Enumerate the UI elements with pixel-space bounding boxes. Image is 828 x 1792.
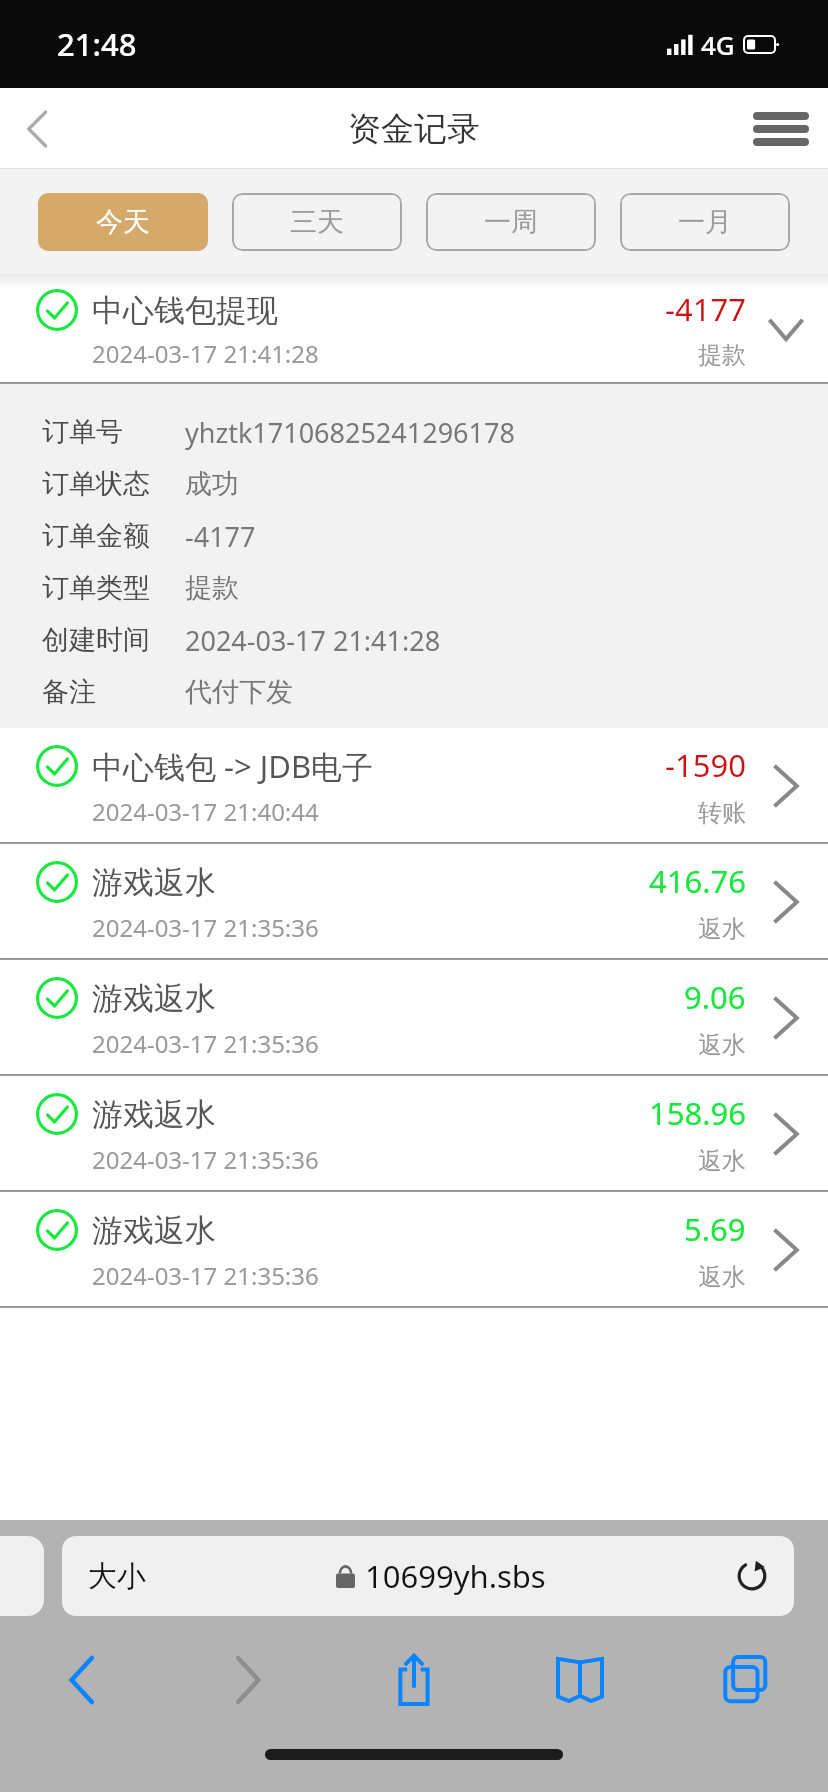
staticText: yhztk17106825241296178: [185, 414, 515, 451]
button[interactable]: 中心钱包提现: [0, 274, 828, 384]
staticText: 2024-03-17 21:35:36: [92, 1027, 319, 1060]
staticText: 一月: [678, 205, 732, 239]
button[interactable]: Menu: [746, 94, 816, 164]
staticText: 订单状态: [42, 467, 185, 501]
staticText: 返水: [698, 1262, 746, 1292]
button[interactable]: 中心钱包 -> JDB电子: [0, 728, 828, 844]
staticText: 资金记录: [348, 108, 480, 150]
staticText: 9.06: [684, 976, 746, 1018]
staticText: -4177: [665, 288, 746, 330]
staticText: 提款: [698, 340, 746, 370]
staticText: 今天: [96, 205, 150, 239]
button[interactable]: 游戏返水: [0, 1076, 828, 1192]
staticText: 成功: [185, 467, 239, 501]
staticText: 21:48: [57, 23, 137, 65]
staticText: 4G: [701, 27, 735, 62]
other: Details: [768, 879, 804, 925]
staticText: 5.69: [684, 1208, 746, 1250]
staticText: 2024-03-17 21:40:44: [92, 795, 319, 828]
staticText: 2024-03-17 21:41:28: [92, 337, 319, 370]
button[interactable]: 三天: [232, 193, 402, 251]
staticText: 416.76: [649, 860, 746, 902]
staticText: 游戏返水: [92, 1095, 216, 1134]
staticText: 提款: [185, 571, 239, 605]
staticText: 订单类型: [42, 571, 185, 605]
button[interactable]: 游戏返水: [0, 844, 828, 960]
staticText: 2024-03-17 21:35:36: [92, 911, 319, 944]
staticText: 备注: [42, 675, 185, 709]
staticText: 2024-03-17 21:35:36: [92, 1143, 319, 1176]
button[interactable]: Previous tab: [0, 1536, 44, 1616]
staticText: 大小: [88, 1558, 146, 1595]
other: Details: [768, 995, 804, 1041]
staticText: -4177: [185, 518, 256, 555]
staticText: 转账: [698, 798, 746, 828]
button[interactable]: Forward: [204, 1636, 292, 1724]
button[interactable]: Bookmarks: [536, 1636, 624, 1724]
staticText: 返水: [698, 914, 746, 944]
staticText: 158.96: [649, 1092, 746, 1134]
staticText: 一周: [484, 205, 538, 239]
staticText: 代付下发: [185, 675, 293, 709]
button[interactable]: Back: [38, 1636, 126, 1724]
button[interactable]: Back: [0, 91, 76, 167]
staticText: 返水: [698, 1146, 746, 1176]
staticText: 三天: [290, 205, 344, 239]
button[interactable]: 游戏返水: [0, 1192, 828, 1308]
staticText: 10699yh.sbs: [365, 1555, 546, 1597]
button[interactable]: 大小: [62, 1536, 794, 1616]
staticText: 创建时间: [42, 623, 185, 657]
staticText: 订单金额: [42, 519, 185, 553]
staticText: 中心钱包 -> JDB电子: [92, 745, 374, 787]
button[interactable]: Tabs: [702, 1636, 790, 1724]
button[interactable]: Share: [370, 1636, 458, 1724]
other: Collapse: [768, 306, 804, 352]
button[interactable]: 今天: [38, 193, 208, 251]
staticText: -1590: [665, 744, 746, 786]
other: Details: [768, 763, 804, 809]
staticText: 游戏返水: [92, 863, 216, 902]
staticText: 游戏返水: [92, 979, 216, 1018]
staticText: 2024-03-17 21:35:36: [92, 1259, 319, 1292]
staticText: 返水: [698, 1030, 746, 1060]
other: Details: [768, 1227, 804, 1273]
other: Details: [768, 1111, 804, 1157]
staticText: 订单号: [42, 415, 185, 449]
staticText: 中心钱包提现: [92, 291, 278, 330]
button[interactable]: 游戏返水: [0, 960, 828, 1076]
staticText: 2024-03-17 21:41:28: [185, 622, 441, 659]
staticText: 游戏返水: [92, 1211, 216, 1250]
button[interactable]: 一月: [620, 193, 790, 251]
button[interactable]: 一周: [426, 193, 596, 251]
